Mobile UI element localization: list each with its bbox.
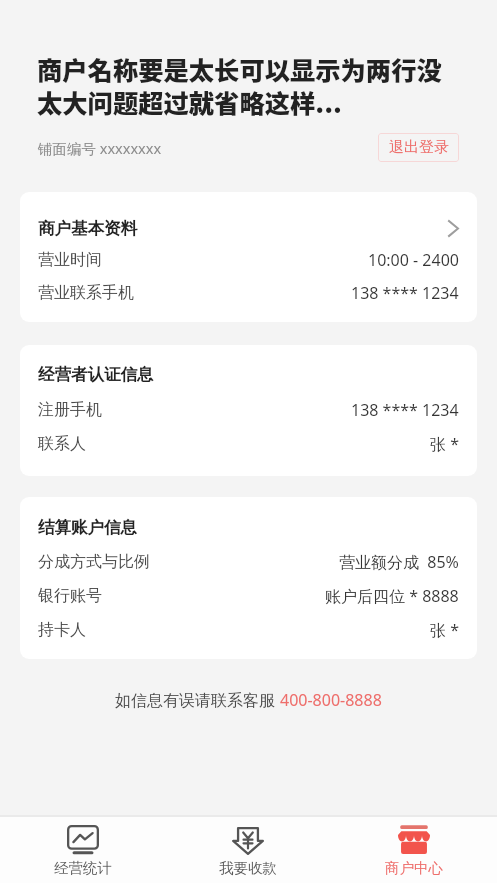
staticText: 如信息有误请联系客服 — [115, 689, 280, 711]
button[interactable]: 400-800-8888 — [280, 689, 382, 711]
staticText: 分成方式与比例 — [38, 552, 150, 572]
button[interactable]: 经营统计 — [0, 817, 165, 883]
staticText: 营业联系手机 — [38, 283, 134, 303]
staticText: 注册手机 — [38, 400, 102, 420]
button[interactable]: 退出登录 — [378, 133, 459, 162]
staticText: 结算账户信息 — [38, 517, 137, 538]
staticText: 商户名称要是太长可以显示为两行没太大问题超过就省略这样... — [37, 51, 445, 121]
staticText: 账户后四位 * 8888 — [325, 585, 459, 607]
staticText: 退出登录 — [389, 138, 449, 157]
staticText: 138 **** 1234 — [351, 282, 459, 304]
staticText: 经营统计 — [54, 859, 112, 877]
button[interactable]: 我要收款 — [165, 817, 331, 883]
staticText: 张 * — [430, 433, 459, 455]
staticText: 营业额分成 85% — [339, 551, 459, 573]
staticText: 商户中心 — [385, 859, 443, 877]
other: 查看商户基本资料 — [448, 220, 459, 237]
staticText: 银行账号 — [38, 586, 102, 606]
staticText: 我要收款 — [219, 859, 277, 877]
staticText: 10:00 - 2400 — [368, 249, 459, 271]
staticText: 铺面编号 xxxxxxxx — [38, 138, 162, 158]
staticText: 持卡人 — [38, 620, 86, 640]
button[interactable]: 商户中心 — [331, 817, 497, 883]
staticText: 营业时间 — [38, 250, 102, 270]
staticText: 张 * — [430, 619, 459, 641]
button[interactable]: 商户基本资料 — [20, 211, 477, 245]
staticText: 经营者认证信息 — [38, 364, 154, 385]
staticText: 联系人 — [38, 434, 86, 454]
staticText: 138 **** 1234 — [351, 399, 459, 421]
staticText: 商户基本资料 — [38, 218, 137, 239]
